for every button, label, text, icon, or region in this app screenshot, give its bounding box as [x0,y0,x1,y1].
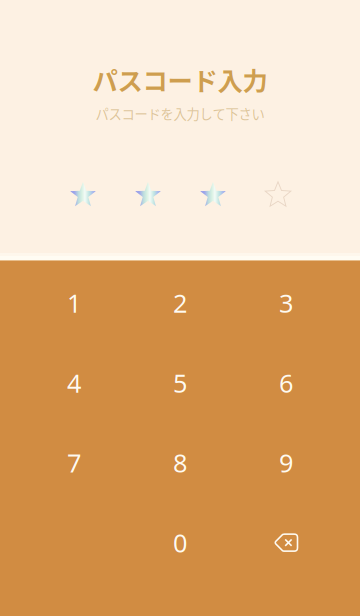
staticText: 3 [279,286,293,320]
staticText: 2 [173,286,187,320]
staticText: 9 [279,446,293,479]
button[interactable]: 0 [127,503,233,583]
button[interactable]: 2 [127,263,233,343]
staticText: 0 [173,526,187,559]
staticText: 6 [279,366,293,400]
staticText: 5 [173,366,187,400]
button[interactable]: 1 [21,263,127,343]
staticText: パスコード入力 [92,61,267,98]
staticText: 4 [67,366,81,400]
button[interactable]: 3 [233,263,339,343]
staticText: 8 [173,446,187,479]
staticText: パスコードを入力して下さい [95,104,264,123]
button[interactable]: 9 [233,423,339,503]
button[interactable]: 6 [233,343,339,423]
staticText: 7 [67,446,81,479]
button[interactable]: 4 [21,343,127,423]
button[interactable]: 8 [127,423,233,503]
button[interactable]: 5 [127,343,233,423]
staticText: 1 [67,286,81,320]
button[interactable]: Delete [233,503,339,583]
button[interactable]: 7 [21,423,127,503]
